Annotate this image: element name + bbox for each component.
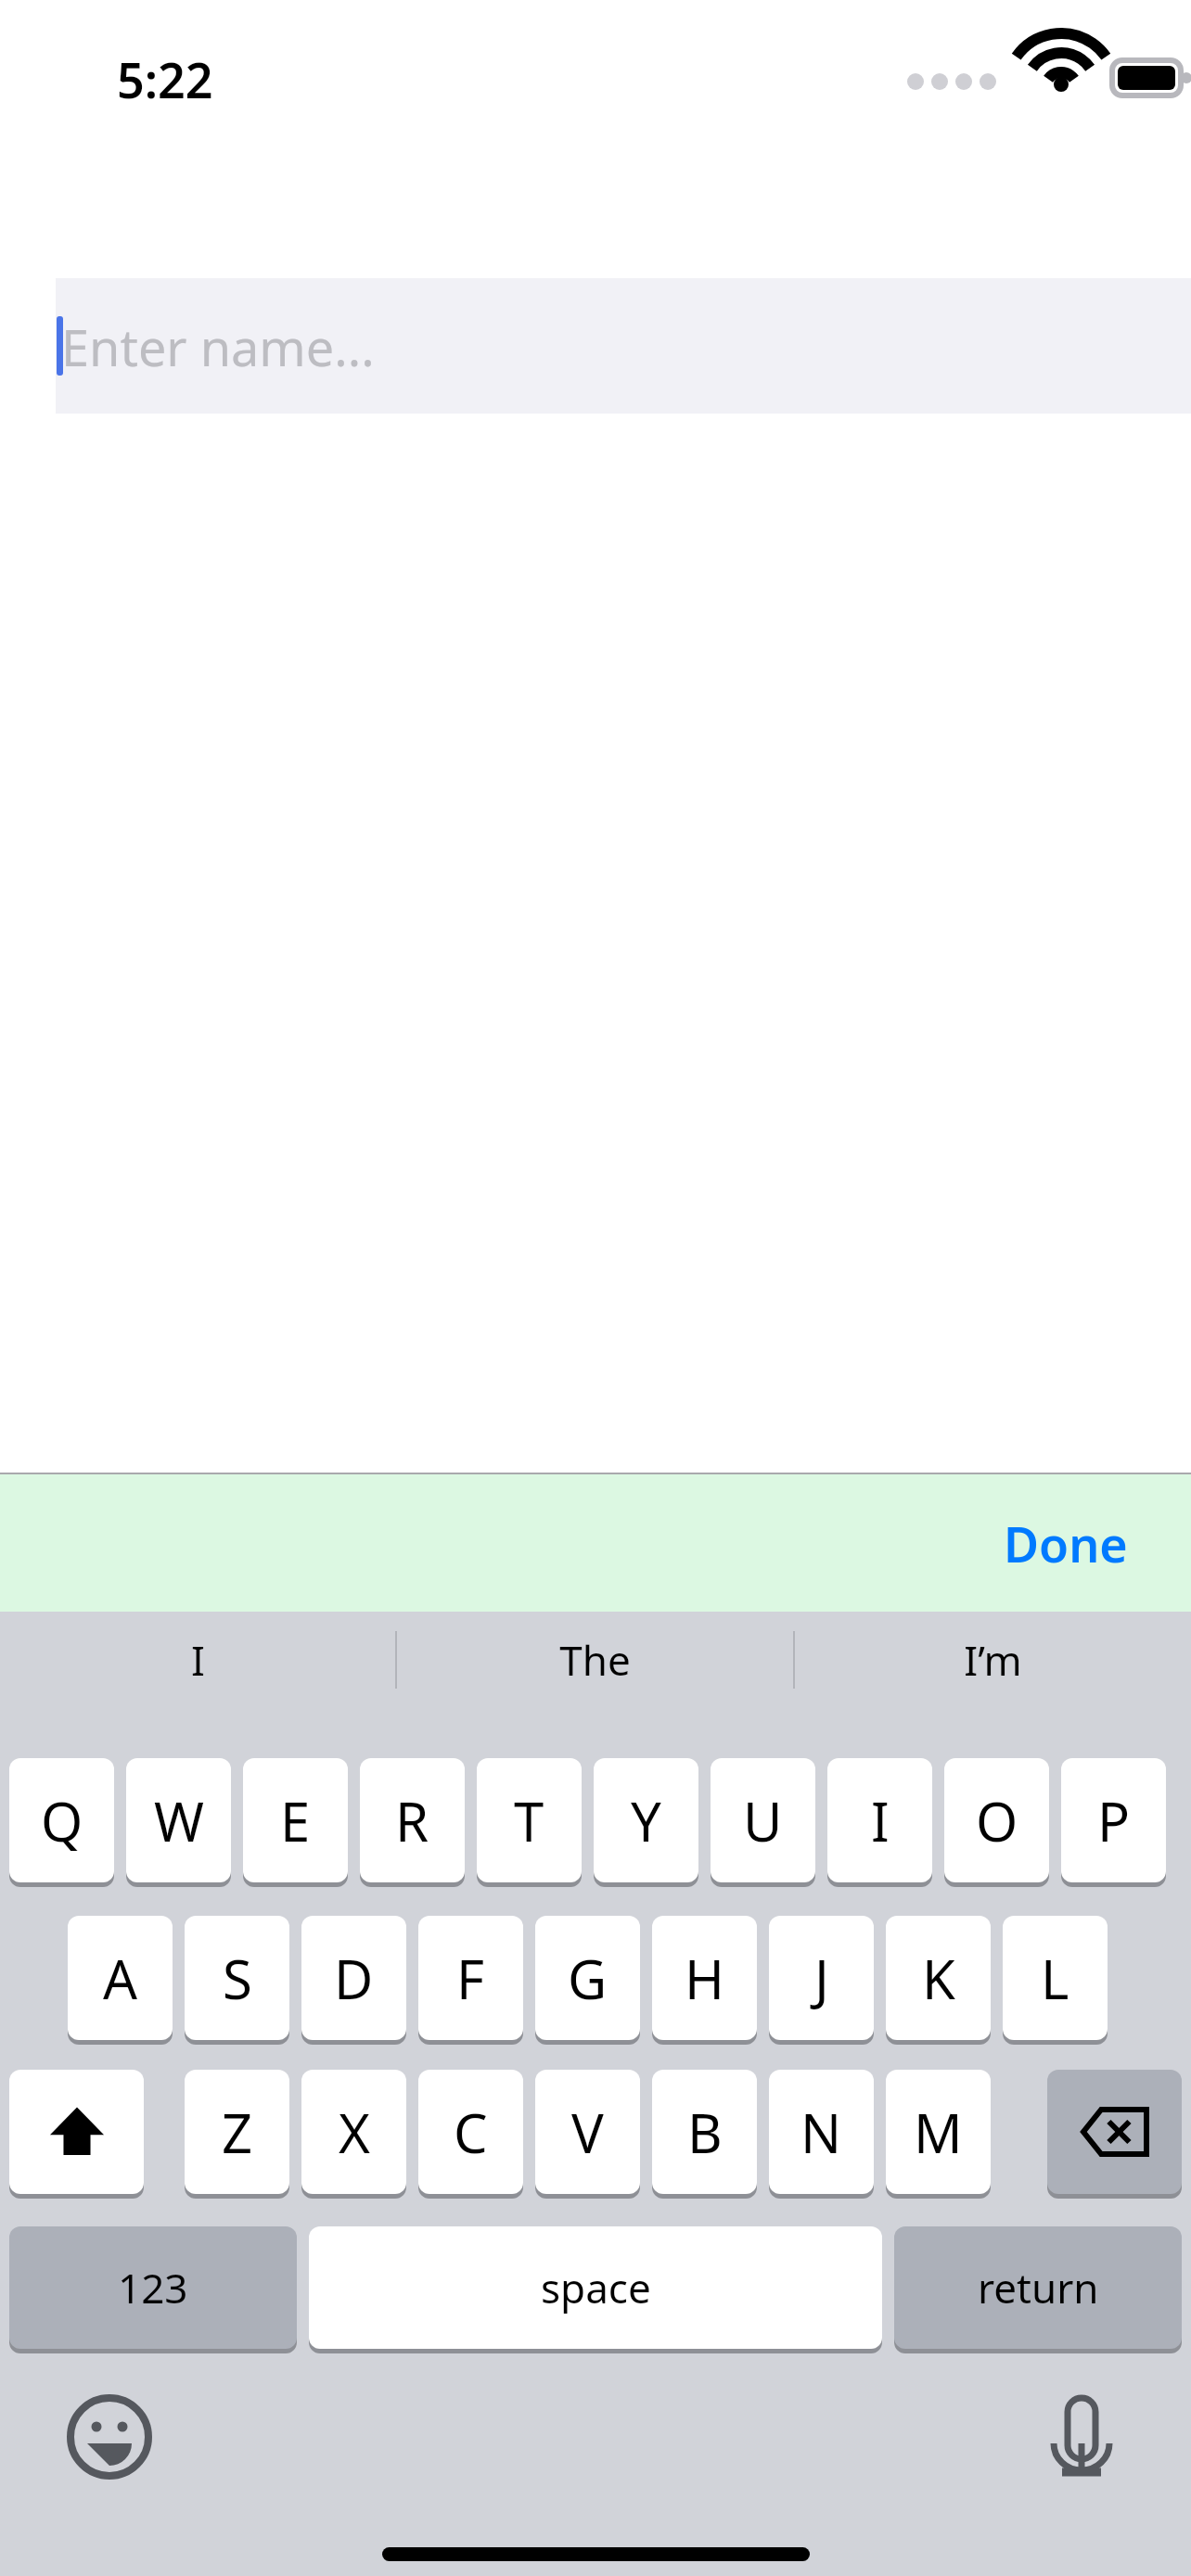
- staticText: H: [685, 1942, 724, 2015]
- staticText: I: [191, 1632, 205, 1688]
- staticText: W: [154, 1784, 204, 1857]
- button[interactable]: V: [535, 2070, 640, 2194]
- button[interactable]: Y: [594, 1758, 698, 1882]
- staticText: return: [978, 2260, 1099, 2315]
- staticText: V: [571, 2096, 604, 2169]
- staticText: D: [334, 1942, 374, 2015]
- staticText: B: [687, 2096, 723, 2169]
- button[interactable]: Emoji: [63, 2391, 156, 2483]
- button[interactable]: The: [397, 1612, 793, 1708]
- button[interactable]: R: [360, 1758, 465, 1882]
- staticText: M: [914, 2096, 963, 2169]
- staticText: U: [743, 1784, 783, 1857]
- staticText: Done: [1004, 1511, 1128, 1576]
- button[interactable]: return: [894, 2226, 1182, 2349]
- staticText: P: [1097, 1784, 1131, 1857]
- staticText: Q: [41, 1784, 83, 1857]
- button[interactable]: P: [1061, 1758, 1166, 1882]
- button[interactable]: U: [711, 1758, 815, 1882]
- button[interactable]: I: [827, 1758, 932, 1882]
- button[interactable]: Shift: [9, 2070, 144, 2194]
- button[interactable]: A: [68, 1916, 173, 2040]
- staticText: The: [559, 1632, 631, 1688]
- staticText: N: [800, 2096, 842, 2169]
- staticText: Enter name...: [61, 312, 375, 381]
- button[interactable]: S: [185, 1916, 289, 2040]
- button[interactable]: J: [769, 1916, 874, 2040]
- button[interactable]: M: [886, 2070, 991, 2194]
- staticText: Y: [631, 1784, 661, 1857]
- button[interactable]: L: [1003, 1916, 1108, 2040]
- staticText: K: [922, 1942, 955, 2015]
- button[interactable]: F: [418, 1916, 523, 2040]
- button[interactable]: 123: [9, 2226, 297, 2349]
- staticText: I’m: [964, 1632, 1022, 1688]
- button[interactable]: Dictation: [1035, 2391, 1128, 2483]
- staticText: S: [223, 1942, 252, 2015]
- staticText: L: [1041, 1942, 1069, 2015]
- button[interactable]: Q: [9, 1758, 114, 1882]
- button[interactable]: [1047, 2070, 1182, 2194]
- staticText: J: [814, 1942, 829, 2015]
- staticText: space: [541, 2260, 651, 2315]
- other: Backspace: [1047, 2070, 1182, 2199]
- button[interactable]: I: [0, 1612, 395, 1708]
- staticText: I: [871, 1784, 890, 1857]
- button[interactable]: X: [301, 2070, 406, 2194]
- button[interactable]: D: [301, 1916, 406, 2040]
- button[interactable]: N: [769, 2070, 874, 2194]
- staticText: Z: [222, 2096, 253, 2169]
- staticText: C: [454, 2096, 488, 2169]
- button[interactable]: G: [535, 1916, 640, 2040]
- staticText: 5:22: [117, 46, 213, 112]
- staticText: G: [568, 1942, 608, 2015]
- staticText: E: [280, 1784, 311, 1857]
- button[interactable]: C: [418, 2070, 523, 2194]
- button[interactable]: K: [886, 1916, 991, 2040]
- button[interactable]: H: [652, 1916, 757, 2040]
- button[interactable]: E: [243, 1758, 348, 1882]
- staticText: 123: [118, 2260, 188, 2315]
- button[interactable]: O: [944, 1758, 1049, 1882]
- staticText: O: [976, 1784, 1018, 1857]
- other: Shift: [46, 2101, 108, 2162]
- button[interactable]: Z: [185, 2070, 289, 2194]
- staticText: T: [514, 1784, 544, 1857]
- staticText: X: [339, 2096, 370, 2169]
- button[interactable]: Done: [994, 1501, 1137, 1586]
- button[interactable]: W: [126, 1758, 231, 1882]
- button[interactable]: space: [309, 2226, 882, 2349]
- staticText: R: [395, 1784, 429, 1857]
- button[interactable]: T: [477, 1758, 582, 1882]
- staticText: F: [456, 1942, 485, 2015]
- button[interactable]: Enter name...: [56, 278, 1191, 414]
- button[interactable]: B: [652, 2070, 757, 2194]
- staticText: A: [103, 1942, 138, 2015]
- button[interactable]: I’m: [795, 1612, 1191, 1708]
